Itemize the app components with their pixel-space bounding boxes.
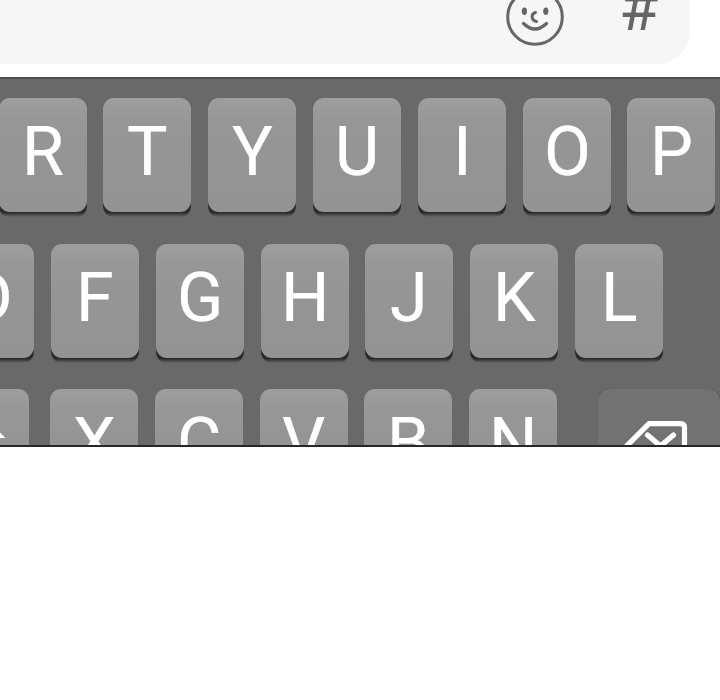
staticText: J: [390, 258, 428, 338]
button[interactable]: Message input field: [0, 0, 690, 64]
staticText: T: [127, 112, 168, 192]
button[interactable]: U: [313, 98, 401, 212]
button[interactable]: C: [155, 389, 243, 503]
button[interactable]: G: [156, 244, 244, 358]
staticText: V: [282, 403, 326, 483]
button[interactable]: K: [470, 244, 558, 358]
staticText: L: [601, 258, 638, 338]
button[interactable]: I: [418, 98, 506, 212]
button[interactable]: N: [469, 389, 557, 503]
button[interactable]: P: [627, 98, 715, 212]
button[interactable]: Shift: [0, 389, 29, 503]
staticText: D: [0, 258, 13, 338]
staticText: P: [650, 112, 693, 192]
staticText: C: [177, 403, 222, 483]
button[interactable]: O: [523, 98, 611, 212]
staticText: B: [387, 403, 430, 483]
button[interactable]: F: [51, 244, 139, 358]
staticText: F: [76, 258, 114, 338]
button[interactable]: D: [0, 244, 34, 358]
button[interactable]: H: [261, 244, 349, 358]
staticText: H: [281, 258, 330, 338]
staticText: K: [493, 258, 536, 338]
staticText: U: [335, 112, 380, 192]
button[interactable]: Backspace: [598, 389, 720, 503]
staticText: O: [544, 112, 591, 192]
staticText: #: [619, 0, 659, 41]
button[interactable]: L: [575, 244, 663, 358]
button[interactable]: V: [260, 389, 348, 503]
staticText: Y: [232, 112, 273, 192]
button[interactable]: Emoji: [505, 0, 565, 47]
button[interactable]: Hashtag: [604, 0, 674, 41]
button[interactable]: B: [364, 389, 452, 503]
staticText: I: [453, 112, 472, 192]
staticText: X: [73, 403, 116, 483]
button[interactable]: R: [0, 98, 87, 212]
button[interactable]: J: [365, 244, 453, 358]
staticText: R: [22, 112, 64, 192]
button[interactable]: X: [50, 389, 138, 503]
staticText: G: [177, 258, 224, 338]
staticText: N: [489, 403, 538, 483]
button[interactable]: T: [103, 98, 191, 212]
button[interactable]: Y: [208, 98, 296, 212]
